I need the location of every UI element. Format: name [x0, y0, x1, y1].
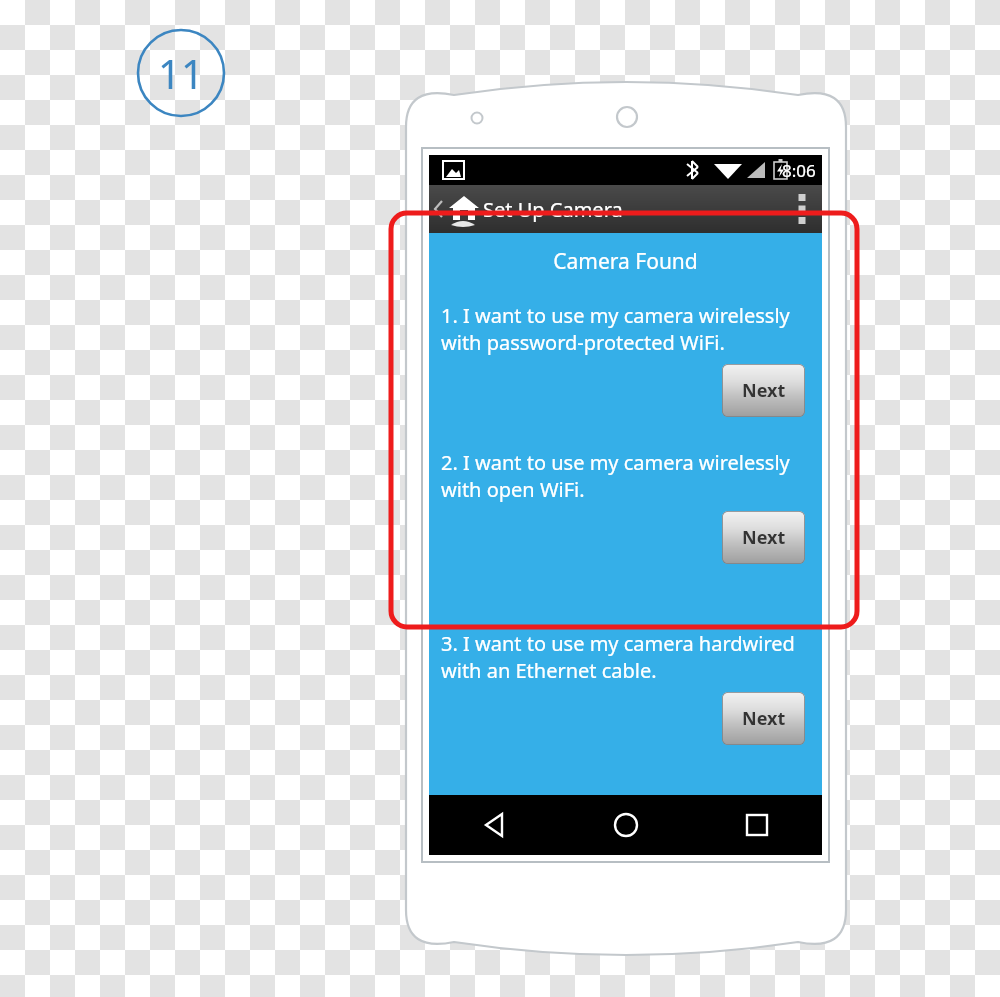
button[interactable]: Next: [722, 511, 805, 564]
staticText: Set Up Camera: [483, 196, 623, 223]
staticText: 2. I want to use my camera wirelessly wi…: [441, 449, 808, 503]
button[interactable]: Next: [722, 364, 805, 417]
staticText: Next: [742, 378, 786, 403]
button[interactable]: Next: [722, 692, 805, 745]
staticText: 8:06: [782, 159, 816, 182]
button[interactable]: Up, home: [429, 185, 822, 233]
button[interactable]: More options: [782, 185, 822, 233]
staticText: Camera Found: [429, 247, 822, 276]
staticText: Next: [742, 706, 786, 731]
staticText: 11: [158, 46, 204, 100]
button[interactable]: Recents: [691, 795, 822, 855]
staticText: 3. I want to use my camera hardwired wit…: [441, 630, 808, 684]
button[interactable]: Home: [560, 795, 691, 855]
staticText: 1. I want to use my camera wirelessly wi…: [441, 302, 808, 356]
button[interactable]: Back: [429, 795, 560, 855]
other: Up, home: [429, 185, 483, 233]
staticText: Next: [742, 525, 786, 550]
